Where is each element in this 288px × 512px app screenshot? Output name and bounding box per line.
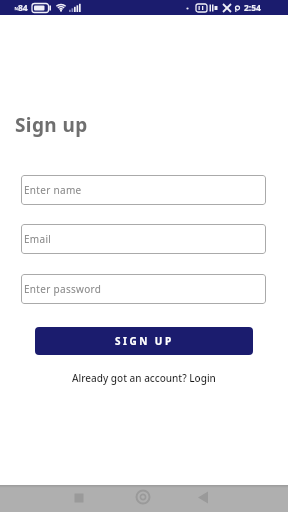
button[interactable] (0, 485, 96, 512)
staticText: Sign up (15, 112, 88, 138)
staticText: Enter password (24, 282, 102, 296)
button[interactable]: Already got an account? Login (72, 371, 216, 385)
button[interactable]: Enter password (21, 274, 266, 304)
staticText: Email (24, 232, 52, 246)
button[interactable] (96, 485, 192, 512)
staticText: 84 (18, 2, 28, 14)
button[interactable]: Enter name (21, 175, 266, 205)
staticText: SIGN UP (115, 334, 174, 348)
staticText: 2:54 (244, 2, 261, 14)
button[interactable]: Email (21, 224, 266, 254)
button[interactable] (192, 485, 288, 512)
button[interactable]: SIGN UP (35, 327, 253, 355)
staticText: Enter name (24, 183, 82, 197)
